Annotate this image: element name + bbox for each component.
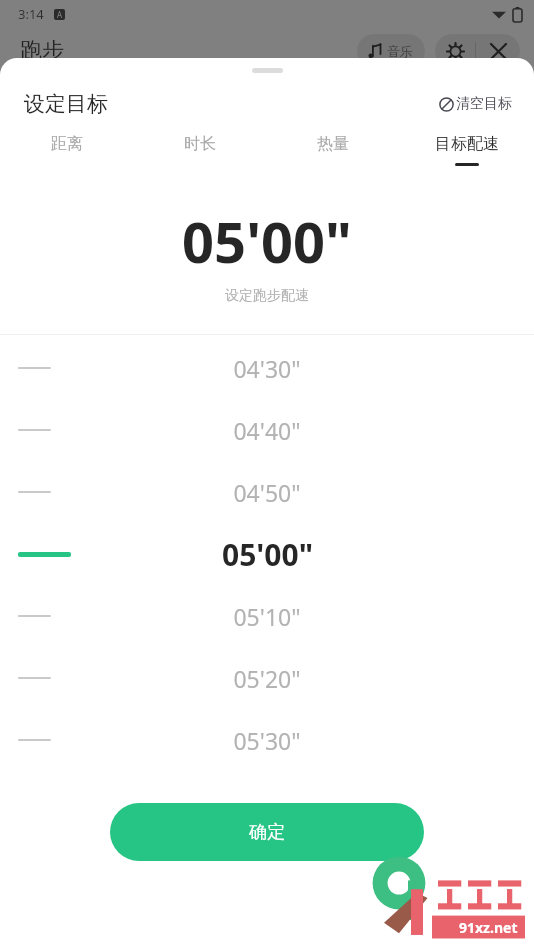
button[interactable]: Close: [476, 34, 520, 68]
button[interactable]: 清空目标: [435, 91, 516, 117]
staticText: 04'50": [233, 477, 301, 508]
button[interactable]: Settings: [435, 34, 475, 68]
staticText: 时长: [184, 134, 216, 154]
button[interactable]: 05'00": [0, 523, 534, 585]
button[interactable]: 05'30": [0, 709, 534, 771]
button[interactable]: 时长: [133, 134, 266, 166]
staticText: 确定: [249, 821, 285, 844]
staticText: 05'00": [222, 534, 313, 575]
staticText: A: [57, 9, 63, 20]
button[interactable]: 04'40": [0, 399, 534, 461]
staticText: 05'30": [233, 725, 301, 756]
staticText: 04'40": [233, 415, 301, 446]
staticText: 热量: [317, 134, 349, 154]
staticText: 04'30": [233, 353, 301, 384]
staticText: 05'20": [233, 663, 301, 694]
button[interactable]: 04'30": [0, 337, 534, 399]
staticText: 清空目标: [456, 95, 512, 113]
staticText: 91xz.net: [459, 918, 518, 937]
staticText: 设定跑步配速: [225, 287, 309, 305]
button[interactable]: 距离: [0, 134, 133, 166]
staticText: 跑步: [20, 37, 64, 65]
button[interactable]: 目标配速: [400, 134, 534, 166]
button[interactable]: 04'50": [0, 461, 534, 523]
button[interactable]: 05'20": [0, 647, 534, 709]
staticText: 音乐: [387, 43, 413, 59]
staticText: 距离: [51, 134, 83, 154]
staticText: 05'10": [233, 601, 301, 632]
button[interactable]: 05'10": [0, 585, 534, 647]
staticText: 3:14: [18, 5, 44, 23]
staticText: 05'00": [182, 203, 352, 279]
button[interactable]: 热量: [266, 134, 400, 166]
button[interactable]: 确定: [110, 803, 424, 861]
button[interactable]: 音乐: [357, 34, 425, 68]
staticText: 设定目标: [24, 91, 108, 117]
staticText: 目标配速: [435, 134, 499, 154]
